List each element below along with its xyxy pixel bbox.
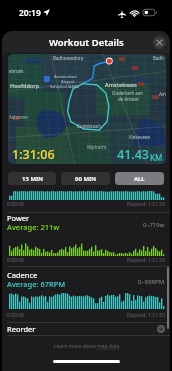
staticText: Kudelstaart bbox=[77, 123, 101, 129]
button[interactable]: Close bbox=[153, 36, 166, 49]
staticText: 41.43 bbox=[117, 146, 150, 163]
staticText: Vinkeveen bbox=[129, 134, 151, 140]
staticText: Average: 211w bbox=[7, 222, 60, 232]
staticText: Badh bbox=[153, 55, 164, 61]
staticText: 1:31:06 bbox=[12, 146, 55, 163]
staticText: Ouderkerk aan bbox=[112, 90, 143, 96]
staticText: KM bbox=[150, 152, 163, 163]
staticText: Elapsed: 1:31:53 bbox=[127, 312, 165, 319]
staticText: Cadence bbox=[7, 270, 38, 280]
staticText: Amstelveen bbox=[105, 81, 137, 88]
staticText: Schiphol (AMS) bbox=[50, 84, 80, 90]
staticText: 0–719w bbox=[143, 221, 165, 229]
staticText: Mijdrecht bbox=[87, 144, 107, 150]
staticText: Airport bbox=[61, 79, 75, 85]
button[interactable]: 15 MIN bbox=[8, 172, 56, 185]
staticText: ALL bbox=[134, 175, 145, 183]
staticText: Elapsed: 1:31:53 bbox=[127, 201, 165, 208]
staticText: Amste bbox=[159, 91, 166, 97]
staticText: Amsterdam bbox=[54, 74, 77, 80]
button[interactable]: Reorder bbox=[7, 322, 165, 335]
staticText: Average: 67RPM bbox=[7, 279, 66, 289]
staticText: 0–93RPM bbox=[138, 278, 165, 286]
staticText: 20:19 bbox=[19, 7, 41, 19]
staticText: 60 MIN bbox=[75, 175, 96, 183]
staticText: Elapsed: 1:31:53 bbox=[127, 257, 165, 264]
staticText: Hoofddorp bbox=[10, 82, 40, 89]
staticText: Reorder bbox=[7, 324, 36, 334]
staticText: Badhoevedorp bbox=[53, 55, 84, 61]
staticText: 0:00:00 bbox=[7, 201, 24, 208]
staticText: 0:00:00 bbox=[7, 312, 24, 319]
staticText: Aalsmeer bbox=[9, 114, 29, 120]
button[interactable]: ALL bbox=[115, 172, 164, 185]
staticText: Workout Details bbox=[49, 36, 124, 49]
staticText: Learn more about bbox=[53, 343, 97, 350]
staticText: 0:00:00 bbox=[7, 257, 24, 264]
staticText: ebroek bbox=[9, 68, 24, 74]
other: Reorder bbox=[157, 325, 165, 333]
staticText: 15 MIN bbox=[22, 175, 43, 183]
staticText: Power bbox=[7, 213, 30, 223]
button[interactable]: map data bbox=[97, 343, 120, 350]
staticText: de Amstel bbox=[118, 96, 139, 102]
button[interactable]: 60 MIN bbox=[61, 172, 110, 185]
